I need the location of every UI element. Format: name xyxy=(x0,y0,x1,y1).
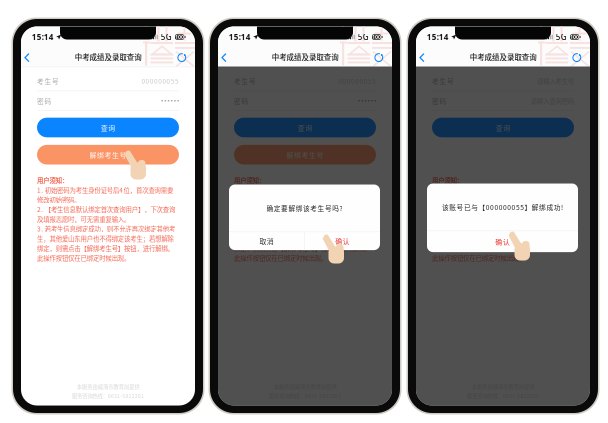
staticText: 100 xyxy=(372,33,381,41)
button[interactable]: 取消 xyxy=(229,232,304,250)
staticText: 000000055 xyxy=(338,76,376,86)
staticText: 密码 xyxy=(234,96,248,106)
button[interactable]: 确认 xyxy=(427,231,578,252)
staticText: 此操作按钮仅在已绑定时候出现。 xyxy=(37,253,130,262)
staticText: 取消 xyxy=(259,236,274,246)
staticText: 5G xyxy=(161,32,172,42)
staticText: 用户须知： xyxy=(432,176,463,185)
staticText: 用户须知： xyxy=(37,176,68,185)
staticText: 考生号 xyxy=(37,76,59,86)
button[interactable]: 解绑考生号 xyxy=(37,145,179,164)
button[interactable]: 查询 xyxy=(432,118,574,137)
staticText: 修改初始密码。 xyxy=(37,195,80,204)
staticText: 3. 若考生信息绑定成功，则不允许再次绑定其他考 xyxy=(432,224,570,233)
staticText: 密码 xyxy=(37,96,51,106)
button[interactable]: 查询 xyxy=(37,118,179,137)
staticText: 服务咨询热线：0631-5812201 xyxy=(72,392,144,399)
button[interactable]: Back xyxy=(216,47,232,68)
staticText: 3. 若考生信息绑定成功，则不允许再次绑定其他考 xyxy=(37,224,175,233)
staticText: 15:14 xyxy=(427,32,449,42)
button[interactable]: Refresh xyxy=(568,49,585,66)
staticText: 该账号已与【000000055】解绑成功! xyxy=(442,202,563,212)
staticText: 中考成绩及录取查询 xyxy=(470,52,536,62)
staticText: 此操作按钮仅在已绑定时候出现。 xyxy=(432,253,525,262)
staticText: 考生号 xyxy=(432,76,454,86)
staticText: 请输入查询密码 xyxy=(531,96,574,105)
button[interactable]: Refresh xyxy=(173,49,190,66)
staticText: 100 xyxy=(570,33,579,41)
staticText: 密码 xyxy=(432,96,446,106)
staticText: 及填报志愿时，可无需重复输入。 xyxy=(37,214,130,224)
button[interactable]: 查询 xyxy=(234,118,376,137)
button[interactable]: Back xyxy=(19,47,35,68)
button[interactable]: 解绑考生号 xyxy=(234,145,376,164)
staticText: 查询 xyxy=(496,122,510,132)
staticText: 15:14 xyxy=(229,32,251,42)
staticText: 2. 【考生信息默认绑定首次查询用户】，下次查询 xyxy=(37,205,175,214)
staticText: 解绑考生号 xyxy=(89,150,126,160)
staticText: 绑定，则需点击【解绑考生号】按钮，进行解绑。 xyxy=(37,243,174,253)
staticText: 确认 xyxy=(495,237,510,247)
staticText: 请输入考生号 xyxy=(537,76,574,86)
staticText: 查询 xyxy=(298,122,312,132)
staticText: 000000055 xyxy=(141,76,179,86)
staticText: 用户须知： xyxy=(234,176,265,185)
staticText: 查询 xyxy=(101,122,115,132)
staticText: 此操作按钮仅在已绑定时候出现。 xyxy=(234,253,327,262)
staticText: 生，其他爱山东用户也不得绑定该考生；若想解除 xyxy=(37,234,174,243)
staticText: 生，其他爱山东用户也不得绑定该考生；若想解除 xyxy=(432,234,569,243)
staticText: 解绑考生号 xyxy=(286,150,323,160)
button[interactable]: Back xyxy=(414,47,430,68)
staticText: 确认 xyxy=(335,236,350,246)
staticText: 确定要解绑该考生号吗? xyxy=(266,203,342,213)
button[interactable]: Refresh xyxy=(370,49,387,66)
staticText: 生，其他爱山东用户也不得绑定该考生；若想解除 xyxy=(234,234,371,243)
staticText: 中考成绩及录取查询 xyxy=(75,52,141,62)
staticText: 5G xyxy=(358,32,369,42)
button[interactable]: 确认 xyxy=(305,232,380,250)
staticText: 100 xyxy=(175,33,184,41)
staticText: 考生号 xyxy=(234,76,256,86)
staticText: 2. 【考生信息默认绑定首次查询用户】，下次查询 xyxy=(234,205,372,214)
staticText: 绑定，则需点击【解绑考生号】按钮，进行解绑。 xyxy=(432,243,569,253)
staticText: 15:14 xyxy=(32,32,54,42)
staticText: 本服务由威海市教育局提供 xyxy=(77,382,139,390)
staticText: 绑定，则需点击【解绑考生号】按钮，进行解绑。 xyxy=(234,243,371,253)
staticText: 2. 【考生信息默认绑定首次查询用户】，下次查询 xyxy=(432,205,570,214)
staticText: 5G xyxy=(556,32,567,42)
staticText: 中考成绩及录取查询 xyxy=(272,52,338,62)
staticText: 1. 初始密码为考生身份证号后4位，首次查询需要 xyxy=(37,185,173,195)
